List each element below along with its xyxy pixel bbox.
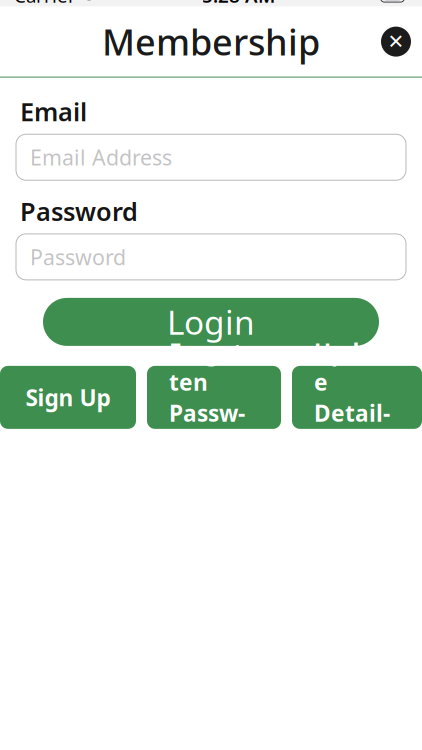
staticText: Email Address: [30, 143, 172, 171]
staticText: Membership: [102, 18, 320, 65]
staticText: Email: [20, 95, 87, 128]
staticText: Carrier: [14, 0, 76, 8]
staticText: 5:28 AM: [202, 0, 275, 8]
staticText: Login: [167, 300, 255, 344]
staticText: Update: [314, 337, 390, 397]
button[interactable]: Forgotten: [147, 366, 281, 429]
staticText: ✕: [387, 30, 404, 53]
button[interactable]: Update: [292, 366, 422, 429]
button[interactable]: Email Address: [16, 134, 406, 180]
staticText: Sign Up: [25, 382, 110, 412]
button[interactable]: Sign Up: [0, 366, 136, 429]
staticText: Password: [20, 194, 138, 228]
staticText: Password: [169, 398, 245, 458]
staticText: Details: [314, 398, 390, 458]
staticText: Password: [30, 243, 126, 271]
button[interactable]: Close: [374, 20, 418, 64]
staticText: Forgotten: [169, 337, 250, 397]
button[interactable]: Login: [43, 298, 379, 346]
button[interactable]: Password: [16, 234, 406, 280]
